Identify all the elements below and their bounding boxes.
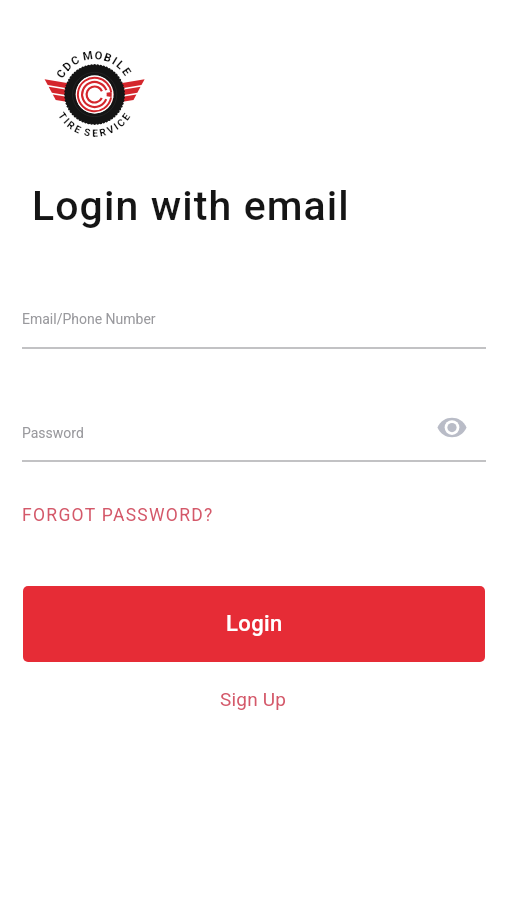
staticText: Email/Phone Number <box>22 311 156 327</box>
staticText: FORGOT PASSWORD? <box>22 505 214 526</box>
button[interactable]: Sign Up <box>208 684 299 714</box>
button[interactable]: Login <box>23 586 485 662</box>
button[interactable]: FORGOT PASSWORD? <box>22 505 214 526</box>
button[interactable]: Show password <box>433 409 470 445</box>
staticText: Login with email <box>32 182 350 230</box>
staticText: Password <box>22 425 84 441</box>
staticText: Login <box>226 611 283 637</box>
button[interactable]: Email/Phone Number <box>22 311 156 327</box>
button[interactable]: Password <box>22 425 84 441</box>
staticText: Sign Up <box>220 688 287 710</box>
